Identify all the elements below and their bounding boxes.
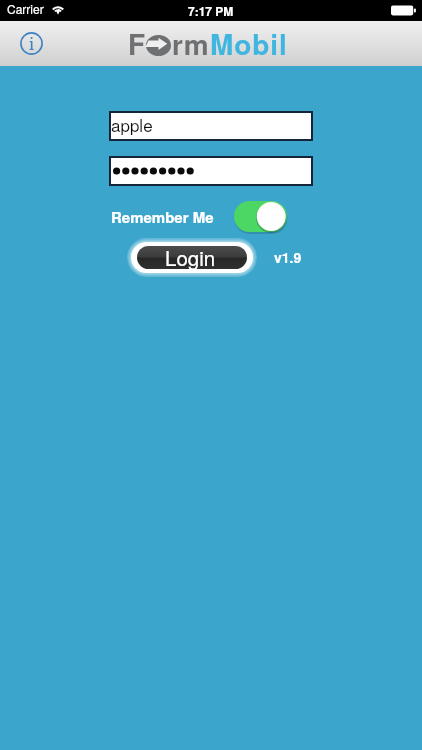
staticText: rm	[172, 23, 210, 63]
staticText: Login	[165, 242, 216, 271]
staticText: Remember Me	[111, 206, 214, 227]
staticText: F	[128, 23, 147, 63]
button[interactable]: Login	[131, 242, 253, 273]
button[interactable]: Remember Me toggle	[234, 201, 287, 232]
button[interactable]: apple	[109, 111, 313, 141]
staticText: Carrier	[7, 0, 44, 17]
staticText: 7:17 PM	[188, 2, 234, 19]
staticText: Mobil	[210, 23, 288, 63]
button[interactable]: Info	[16, 28, 46, 58]
staticText: apple	[111, 112, 153, 136]
staticText: v1.9	[274, 247, 302, 267]
button[interactable]	[109, 156, 313, 186]
staticText: i	[29, 33, 35, 55]
